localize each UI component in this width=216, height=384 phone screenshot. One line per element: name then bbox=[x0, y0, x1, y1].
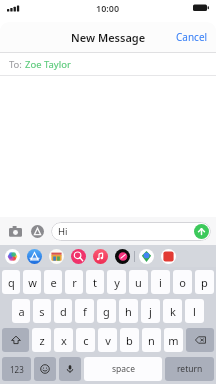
staticText: c bbox=[83, 333, 89, 348]
staticText: Zoe Taylor bbox=[25, 58, 71, 71]
staticText: w bbox=[28, 275, 37, 290]
button[interactable]: Fitness bbox=[115, 249, 130, 264]
staticText: g bbox=[103, 304, 110, 319]
staticText: space bbox=[112, 363, 135, 375]
staticText: i bbox=[159, 275, 162, 290]
staticText: n bbox=[148, 333, 155, 348]
staticText: t bbox=[93, 275, 97, 290]
button[interactable]: Dictation bbox=[59, 357, 81, 381]
button[interactable]: g bbox=[97, 299, 116, 323]
button[interactable]: 123 bbox=[2, 357, 31, 381]
button[interactable]: c bbox=[76, 328, 95, 352]
staticText: Hi bbox=[58, 225, 68, 238]
button[interactable]: Cancel bbox=[168, 23, 216, 51]
staticText: r bbox=[72, 275, 77, 290]
button[interactable]: Backspace bbox=[186, 328, 214, 352]
staticText: 123 bbox=[10, 364, 24, 375]
staticText: u bbox=[135, 275, 142, 290]
staticText: o bbox=[179, 275, 186, 290]
staticText: 10:00 bbox=[96, 2, 120, 14]
button[interactable]: u bbox=[129, 270, 148, 294]
staticText: j bbox=[149, 304, 152, 319]
button[interactable]: d bbox=[54, 299, 72, 323]
staticText: d bbox=[60, 304, 67, 319]
staticText: s bbox=[39, 304, 45, 319]
button[interactable]: App Store bbox=[27, 249, 42, 264]
button[interactable]: j bbox=[141, 299, 160, 323]
staticText: k bbox=[170, 304, 176, 319]
button[interactable]: Photos bbox=[5, 249, 20, 264]
button[interactable]: Hi bbox=[51, 222, 211, 241]
button[interactable]: e bbox=[44, 270, 62, 294]
button[interactable]: Images bbox=[71, 249, 86, 264]
button[interactable]: s bbox=[33, 299, 51, 323]
button[interactable]: space bbox=[84, 357, 162, 381]
button[interactable]: o bbox=[173, 270, 192, 294]
button[interactable]: q bbox=[2, 270, 20, 294]
button[interactable]: Camera bbox=[5, 221, 25, 241]
staticText: f bbox=[83, 304, 87, 319]
staticText: a bbox=[18, 304, 25, 319]
button[interactable]: y bbox=[107, 270, 126, 294]
button[interactable]: return bbox=[165, 357, 214, 381]
button[interactable]: m bbox=[164, 328, 183, 352]
button[interactable]: To: bbox=[0, 53, 216, 75]
staticText: l bbox=[193, 304, 196, 319]
button[interactable]: x bbox=[54, 328, 73, 352]
button[interactable]: b bbox=[120, 328, 139, 352]
button[interactable]: Maps bbox=[139, 249, 154, 264]
staticText: b bbox=[126, 333, 133, 348]
button[interactable]: p bbox=[195, 270, 214, 294]
staticText: z bbox=[39, 333, 45, 348]
button[interactable]: Shift bbox=[2, 328, 29, 352]
staticText: New Message bbox=[71, 30, 146, 45]
staticText: h bbox=[125, 304, 132, 319]
staticText: x bbox=[61, 333, 67, 348]
button[interactable]: w bbox=[23, 270, 41, 294]
button[interactable]: k bbox=[163, 299, 182, 323]
button[interactable]: z bbox=[32, 328, 51, 352]
staticText: e bbox=[50, 275, 57, 290]
staticText: q bbox=[8, 275, 15, 290]
staticText: m bbox=[168, 333, 179, 348]
button[interactable]: Music bbox=[93, 249, 108, 264]
button[interactable]: f bbox=[75, 299, 94, 323]
staticText: y bbox=[114, 275, 120, 290]
button[interactable]: n bbox=[142, 328, 161, 352]
staticText: To: bbox=[9, 58, 25, 71]
button[interactable]: App Store bbox=[27, 221, 47, 241]
button[interactable]: Send bbox=[194, 224, 209, 239]
button[interactable]: r bbox=[65, 270, 83, 294]
staticText: Cancel bbox=[176, 30, 208, 44]
button[interactable]: Emoji bbox=[34, 357, 56, 381]
button[interactable]: v bbox=[98, 328, 117, 352]
staticText: return bbox=[177, 363, 203, 375]
button[interactable]: l bbox=[185, 299, 204, 323]
button[interactable]: t bbox=[86, 270, 104, 294]
button[interactable]: App bbox=[161, 249, 176, 264]
staticText: p bbox=[201, 275, 208, 290]
button[interactable]: Store bbox=[49, 249, 64, 264]
button[interactable]: h bbox=[119, 299, 138, 323]
staticText: v bbox=[105, 333, 111, 348]
button[interactable]: a bbox=[12, 299, 30, 323]
button[interactable]: i bbox=[151, 270, 170, 294]
